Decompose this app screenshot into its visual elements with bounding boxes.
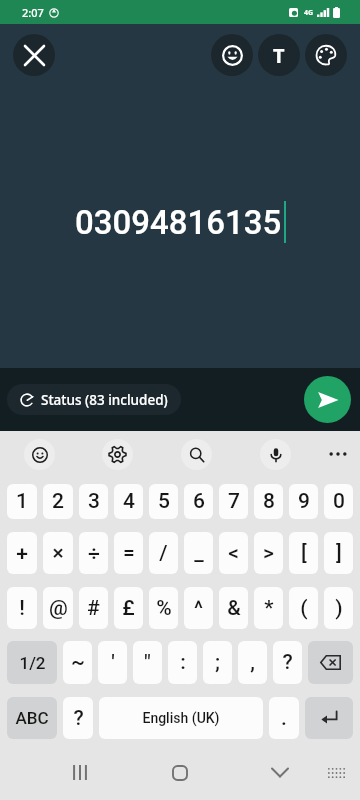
button[interactable]: × — [43, 532, 73, 574]
staticText: T — [273, 42, 285, 69]
button[interactable]: £ — [114, 587, 143, 629]
staticText: . — [281, 706, 287, 731]
staticText: % — [156, 596, 172, 621]
staticText: 2 — [52, 489, 64, 514]
staticText: 03094816135 — [75, 203, 282, 242]
button[interactable]: < — [219, 532, 248, 574]
button[interactable]: 2 — [43, 484, 73, 519]
staticText: 7 — [228, 489, 240, 514]
button[interactable]: : — [168, 641, 197, 684]
staticText: 5 — [158, 489, 170, 514]
staticText: 2:07 — [22, 5, 44, 20]
button[interactable]: 5 — [149, 484, 178, 519]
button[interactable]: Emoji — [24, 439, 55, 470]
staticText: ? — [73, 706, 84, 731]
staticText: > — [263, 541, 274, 566]
staticText: & — [227, 596, 241, 621]
button[interactable]: English (UK) — [99, 697, 263, 739]
button[interactable]: ÷ — [79, 532, 108, 574]
button[interactable]: Send — [304, 376, 351, 423]
staticText: ~ — [71, 650, 85, 675]
button[interactable]: [ — [289, 532, 318, 574]
button[interactable]: 0 — [324, 484, 353, 519]
button[interactable]: * — [254, 587, 283, 629]
button[interactable]: > — [254, 532, 283, 574]
button[interactable]: Change keyboard — [319, 755, 354, 790]
button[interactable]: Text style — [258, 34, 300, 76]
button[interactable]: ^ — [184, 587, 213, 629]
button[interactable]: Recent apps — [62, 755, 97, 790]
staticText: 4G — [304, 8, 314, 18]
staticText: / — [159, 541, 168, 566]
button[interactable]: ' — [98, 641, 127, 684]
staticText: 3 — [88, 489, 100, 514]
button[interactable]: ABC — [7, 697, 57, 739]
staticText: @ — [49, 596, 68, 621]
button[interactable]: 1 — [7, 484, 37, 519]
button[interactable]: Backspace — [308, 641, 353, 684]
button[interactable]: 1/2 — [7, 641, 57, 684]
button[interactable]: & — [219, 587, 248, 629]
button[interactable]: # — [79, 587, 108, 629]
staticText: 1 — [16, 489, 28, 514]
button[interactable]: Background colour — [305, 34, 347, 76]
button[interactable]: ] — [324, 532, 353, 574]
button[interactable]: 4 — [114, 484, 143, 519]
button[interactable]: _ — [184, 532, 213, 574]
button[interactable]: 6 — [184, 484, 213, 519]
staticText: Status (83 included) — [41, 391, 168, 409]
staticText: ? — [282, 650, 293, 675]
staticText: 6 — [193, 489, 205, 514]
staticText: 4 — [123, 489, 135, 514]
button[interactable]: ? — [63, 697, 93, 739]
button[interactable]: ! — [7, 587, 37, 629]
staticText: [ — [301, 541, 307, 566]
button[interactable]: Emoji — [211, 34, 253, 76]
button[interactable]: More options — [315, 431, 360, 477]
button[interactable]: ; — [203, 641, 232, 684]
staticText: 9 — [298, 489, 310, 514]
staticText: " — [144, 650, 151, 675]
staticText: = — [123, 541, 135, 566]
button[interactable]: @ — [43, 587, 73, 629]
staticText: + — [16, 541, 28, 566]
staticText: : — [180, 650, 186, 675]
button[interactable]: 9 — [289, 484, 318, 519]
staticText: 1/2 — [19, 653, 46, 673]
button[interactable]: Keyboard settings — [102, 439, 133, 470]
button[interactable]: Search — [181, 439, 212, 470]
staticText: # — [87, 596, 100, 621]
button[interactable]: 8 — [254, 484, 283, 519]
button[interactable]: + — [7, 532, 37, 574]
staticText: ; — [215, 650, 220, 675]
button[interactable]: = — [114, 532, 143, 574]
button[interactable]: " — [133, 641, 162, 684]
button[interactable]: , — [238, 641, 267, 684]
button[interactable]: ~ — [63, 641, 92, 684]
staticText: * — [264, 596, 274, 621]
button[interactable]: Hide keyboard — [262, 755, 297, 790]
staticText: ÷ — [88, 541, 100, 566]
staticText: English (UK) — [142, 710, 220, 726]
button[interactable]: Voice input — [260, 439, 291, 470]
button[interactable]: / — [149, 532, 178, 574]
button[interactable]: 7 — [219, 484, 248, 519]
staticText: _ — [194, 541, 204, 566]
staticText: ABC — [15, 708, 49, 728]
staticText: , — [250, 650, 255, 675]
staticText: ! — [19, 596, 25, 621]
staticText: ( — [300, 596, 308, 621]
button[interactable]: ) — [324, 587, 353, 629]
button[interactable]: ( — [289, 587, 318, 629]
button[interactable]: Home — [162, 755, 197, 790]
staticText: £ — [122, 596, 135, 621]
button[interactable]: . — [269, 697, 299, 739]
button[interactable]: Status (83 included) — [7, 384, 181, 415]
button[interactable]: 3 — [79, 484, 108, 519]
button[interactable]: % — [149, 587, 178, 629]
button[interactable]: Close — [13, 34, 55, 76]
staticText: ^ — [194, 596, 203, 621]
button[interactable]: ? — [273, 641, 302, 684]
button[interactable]: Enter — [305, 697, 353, 739]
staticText: < — [228, 541, 239, 566]
